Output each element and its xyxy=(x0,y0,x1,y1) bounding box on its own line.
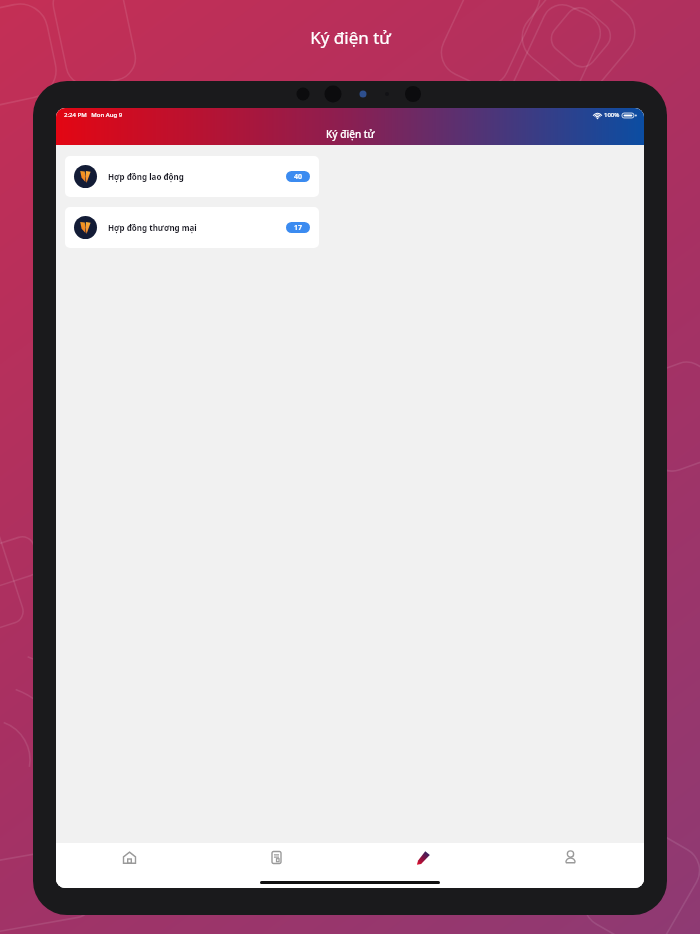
staticText: Ký điện tử xyxy=(310,26,391,49)
staticText: 17 xyxy=(294,223,303,233)
staticText: Hợp đồng thương mại xyxy=(108,222,197,233)
staticText: 100% xyxy=(604,111,620,119)
button[interactable]: Profile xyxy=(497,850,644,888)
staticText: 2:24 PM Mon Aug 9 xyxy=(64,111,123,119)
button[interactable]: Hợp đồng thương mại xyxy=(65,207,319,248)
button[interactable]: Hợp đồng lao động xyxy=(65,156,319,197)
staticText: Hợp đồng lao động xyxy=(108,171,184,182)
button[interactable]: Documents xyxy=(203,850,350,888)
staticText: Ký điện tử xyxy=(326,127,375,141)
button[interactable]: Home xyxy=(56,850,203,888)
button[interactable]: Sign xyxy=(350,850,497,888)
staticText: 40 xyxy=(294,172,303,182)
